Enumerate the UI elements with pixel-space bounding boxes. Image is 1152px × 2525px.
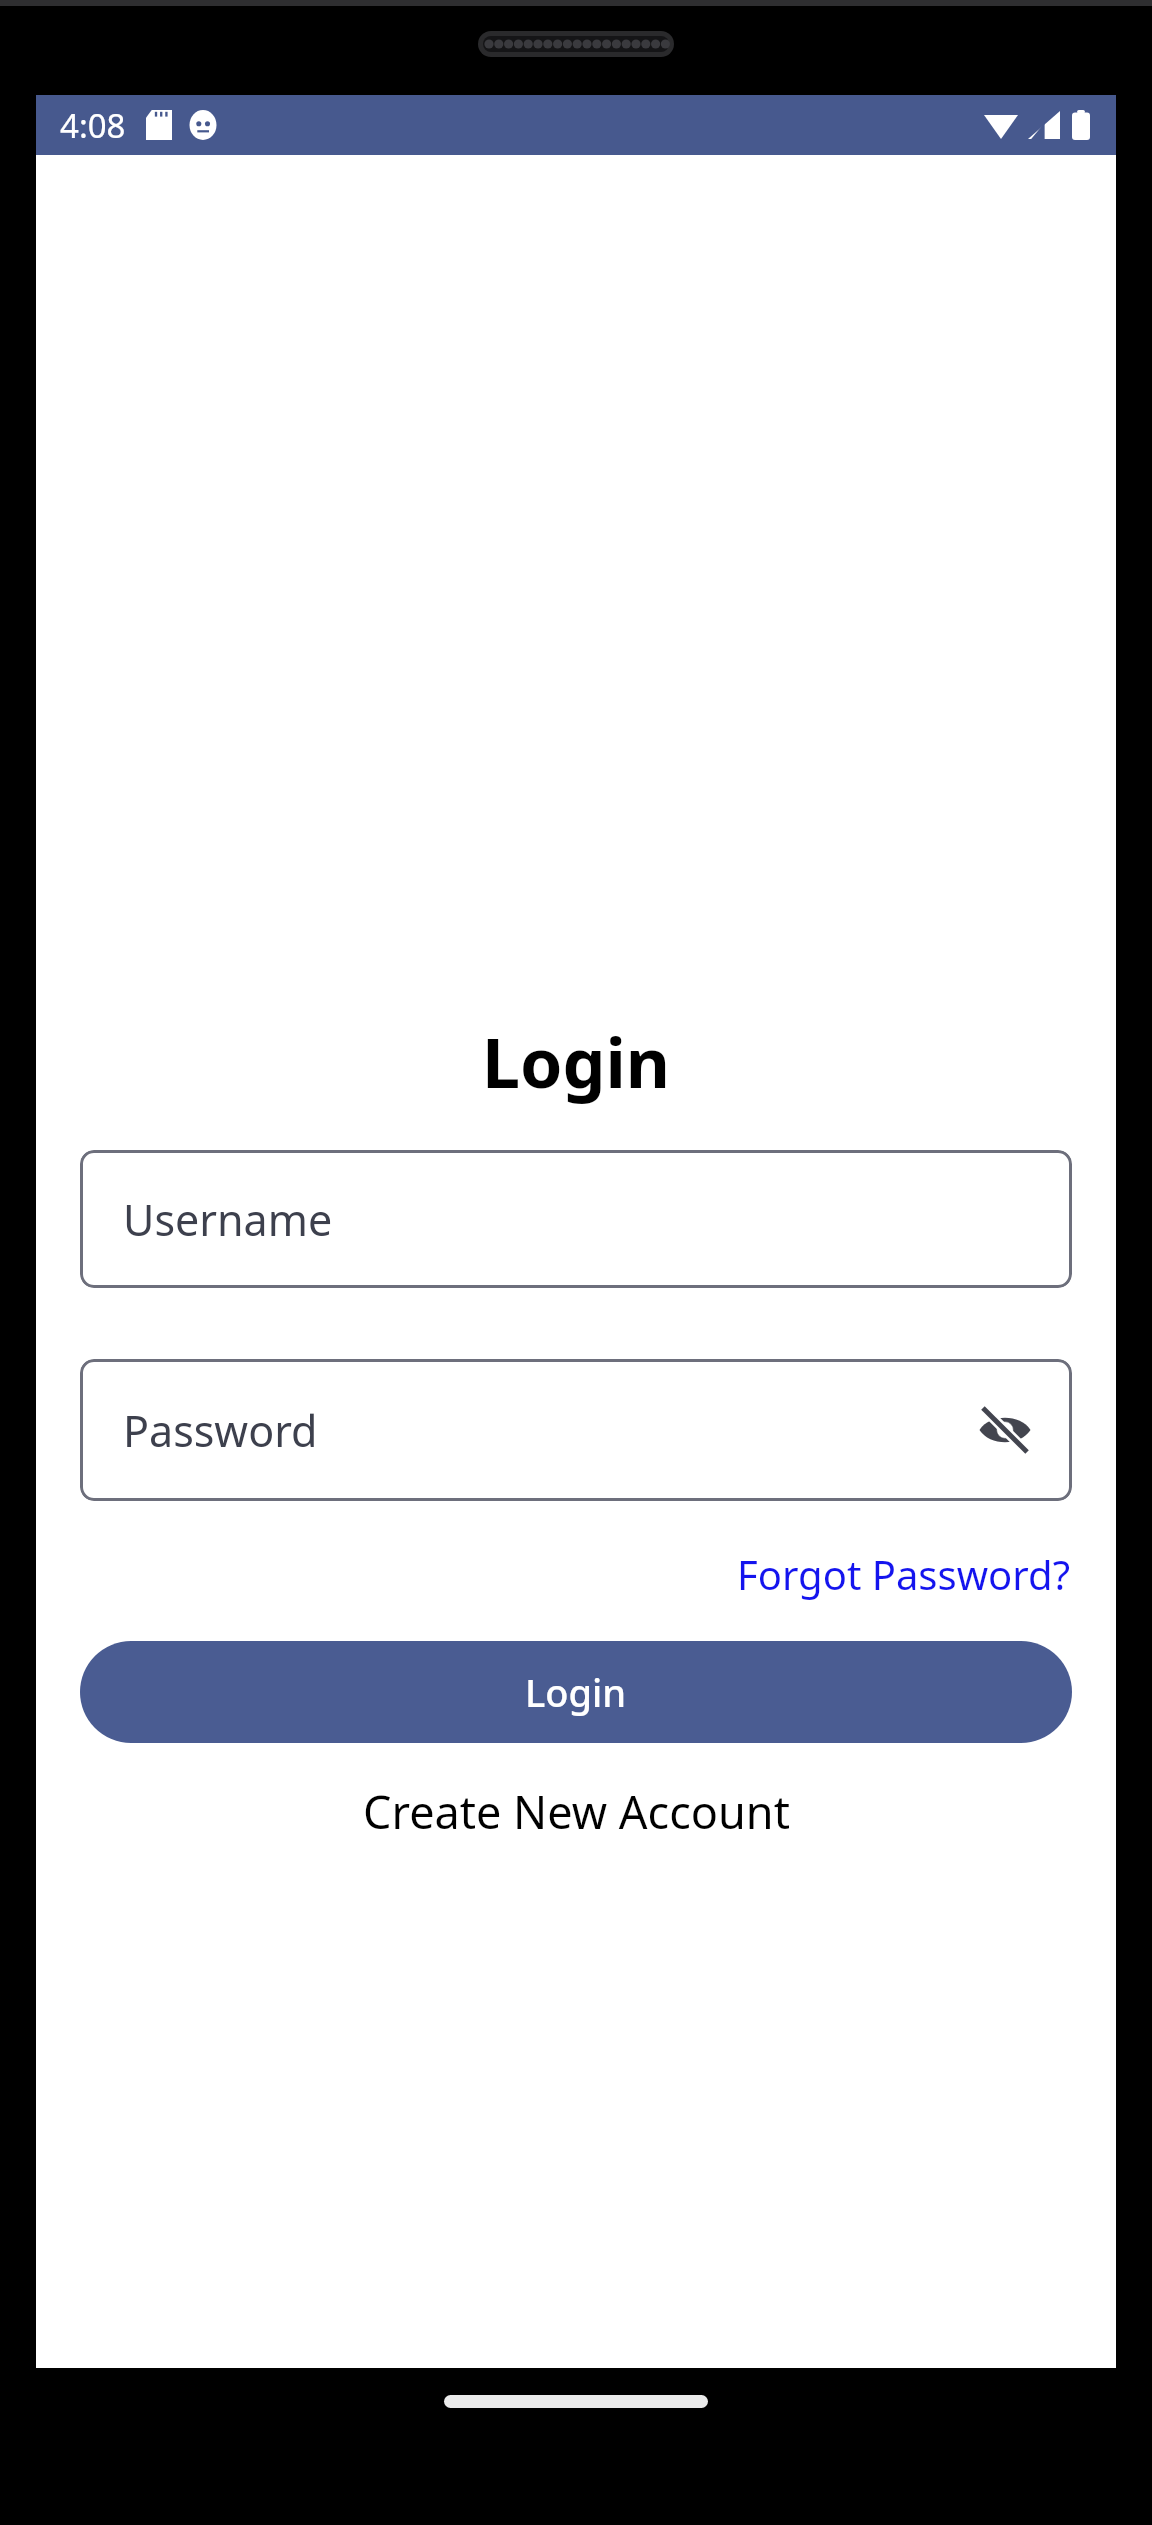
- staticText: Password: [123, 1401, 318, 1460]
- button[interactable]: Show password: [966, 1391, 1044, 1469]
- button[interactable]: Password: [80, 1359, 1072, 1501]
- staticText: 4:08: [60, 103, 126, 148]
- staticText: Login: [80, 1015, 1072, 1108]
- staticText: Create New Account: [363, 1781, 790, 1842]
- button[interactable]: Username: [80, 1150, 1072, 1288]
- staticText: Forgot Password?: [737, 1547, 1070, 1601]
- staticText: Username: [123, 1190, 333, 1249]
- button[interactable]: Create New Account: [80, 1771, 1072, 1852]
- button[interactable]: Forgot Password?: [735, 1543, 1072, 1605]
- button[interactable]: Login: [80, 1641, 1072, 1743]
- staticText: Login: [525, 1666, 627, 1718]
